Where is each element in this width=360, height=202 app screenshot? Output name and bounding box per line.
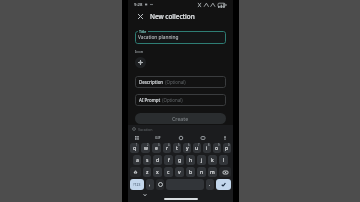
staticText: GIF [155, 135, 161, 140]
button[interactable]: Translate [199, 134, 206, 141]
staticText: . [209, 181, 211, 188]
staticText: z [146, 169, 149, 176]
button[interactable]: Emoji [177, 134, 184, 141]
staticText: b [189, 169, 193, 176]
staticText: Description [139, 79, 164, 85]
staticText: 2 [147, 143, 149, 147]
staticText: 3 [158, 143, 160, 147]
staticText: s [146, 157, 149, 164]
button[interactable]: Create [135, 113, 226, 124]
button[interactable]: r [163, 143, 171, 153]
staticText: 4 [168, 143, 170, 147]
button[interactable]: h [186, 155, 195, 165]
button[interactable]: m [208, 167, 217, 177]
button[interactable]: i [203, 143, 211, 153]
button[interactable]: Voice input [221, 134, 228, 141]
button[interactable]: z [143, 167, 151, 177]
button[interactable]: f [164, 155, 173, 165]
button[interactable]: Choose icon [135, 57, 146, 68]
staticText: Vacation [138, 127, 153, 132]
staticText: New collection [150, 12, 195, 21]
staticText: 9:28 [134, 2, 143, 8]
staticText: 8 [208, 143, 210, 147]
button[interactable]: Backspace [219, 167, 231, 177]
staticText: k [211, 157, 214, 164]
staticText: p [225, 145, 229, 152]
staticText: u [195, 145, 199, 152]
staticText: 1 [136, 143, 138, 147]
button[interactable]: e [152, 143, 161, 153]
staticText: d [156, 157, 160, 164]
staticText: 0 [228, 143, 230, 147]
button[interactable]: v [175, 167, 184, 177]
button[interactable]: y [183, 143, 191, 153]
staticText: m [210, 169, 215, 176]
staticText: f [168, 157, 170, 164]
staticText: Create [172, 115, 189, 122]
button[interactable]: s [143, 155, 151, 165]
button[interactable]: Description [135, 76, 226, 88]
staticText: 6 [188, 143, 190, 147]
staticText: 7 [198, 143, 200, 147]
staticText: AI Prompt [139, 97, 161, 103]
staticText: j [201, 157, 203, 164]
staticText: , [149, 181, 151, 188]
staticText: o [215, 145, 219, 152]
button[interactable]: x [153, 167, 162, 177]
button[interactable]: n [197, 167, 206, 177]
staticText: a [136, 157, 139, 164]
button[interactable]: . [206, 179, 214, 190]
staticText: c [167, 169, 170, 176]
staticText: q [133, 145, 137, 152]
button[interactable]: w [141, 143, 150, 153]
button[interactable]: k [208, 155, 217, 165]
staticText: Vacation planning [138, 34, 179, 41]
staticText: Icon [135, 49, 144, 54]
button[interactable]: o [213, 143, 221, 153]
button[interactable]: b [186, 167, 195, 177]
button[interactable]: p [223, 143, 231, 153]
button[interactable]: ?123 [130, 179, 144, 190]
staticText: Title [139, 29, 147, 34]
button[interactable]: g [175, 155, 184, 165]
staticText: x [156, 169, 159, 176]
button[interactable]: Emoji keyboard [156, 179, 164, 190]
staticText: t [176, 145, 178, 152]
button[interactable]: u [193, 143, 201, 153]
button[interactable]: j [197, 155, 206, 165]
staticText: i [206, 145, 208, 152]
button[interactable]: Shift [130, 167, 141, 177]
staticText: (Optional) [161, 97, 183, 103]
staticText: n [200, 169, 204, 176]
button[interactable]: q [130, 143, 139, 153]
staticText: r [166, 145, 169, 152]
button[interactable]: Enter [216, 179, 231, 190]
button[interactable]: AI Prompt [135, 94, 226, 106]
staticText: ?123 [133, 182, 141, 187]
button[interactable]: Vacation planning [135, 31, 226, 44]
button[interactable]: l [219, 155, 228, 165]
staticText: g [178, 157, 182, 164]
staticText: v [178, 169, 181, 176]
button[interactable]: GIF [155, 135, 161, 140]
staticText: e [155, 145, 158, 152]
button[interactable]: d [153, 155, 162, 165]
staticText: w [144, 145, 148, 152]
button[interactable]: a [133, 155, 141, 165]
staticText: y [186, 145, 189, 152]
staticText: (Optional) [164, 79, 186, 85]
staticText: 9 [218, 143, 220, 147]
button[interactable]: Close [135, 11, 146, 22]
staticText: 5 [178, 143, 180, 147]
button[interactable]: Toolbar [133, 134, 140, 141]
staticText: h [189, 157, 193, 164]
button[interactable]: t [173, 143, 181, 153]
button[interactable]: c [164, 167, 173, 177]
button[interactable]: , [146, 179, 154, 190]
staticText: l [223, 157, 225, 164]
